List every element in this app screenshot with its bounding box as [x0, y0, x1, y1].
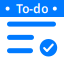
- button[interactable]: Task two: [0, 0, 34, 40]
- button[interactable]: Task three: [0, 0, 33, 53]
- button[interactable]: Add task: [0, 0, 57, 11]
- button[interactable]: Task one: [0, 0, 56, 27]
- staticText: To-do: [16, 0, 48, 16]
- button[interactable]: Menu: [0, 0, 10, 11]
- button[interactable]: Mark complete: [0, 0, 57, 56]
